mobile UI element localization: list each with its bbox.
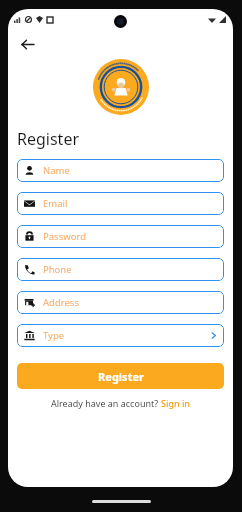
- staticText: Type: [43, 329, 65, 342]
- button[interactable]: Password: [17, 225, 224, 248]
- button[interactable]: Name: [17, 159, 224, 182]
- staticText: Name: [43, 164, 70, 177]
- staticText: Address: [43, 296, 79, 309]
- button[interactable]: Back: [16, 33, 38, 55]
- button[interactable]: Sign in: [161, 397, 191, 409]
- staticText: Register: [17, 128, 80, 150]
- staticText: Already have an account?: [51, 397, 161, 409]
- staticText: Phone: [43, 263, 72, 276]
- button[interactable]: Type: [17, 324, 224, 347]
- button[interactable]: Address: [17, 291, 224, 314]
- button[interactable]: Email: [17, 192, 224, 215]
- staticText: Email: [43, 197, 68, 210]
- staticText: Register: [98, 369, 144, 384]
- staticText: Sign in: [161, 397, 191, 409]
- button[interactable]: Register: [17, 363, 224, 389]
- button[interactable]: Phone: [17, 258, 224, 281]
- staticText: Password: [43, 230, 86, 243]
